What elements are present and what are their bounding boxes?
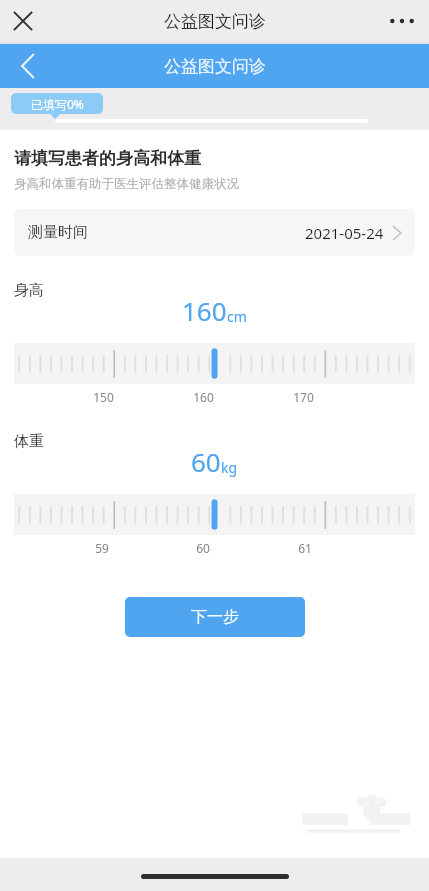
- staticText: 体重: [14, 432, 44, 451]
- button[interactable]: 下一步: [125, 597, 305, 637]
- staticText: 下一步: [191, 607, 239, 627]
- staticText: 公益图文问诊: [164, 11, 266, 32]
- staticText: kg: [221, 458, 238, 477]
- button[interactable]: Close: [6, 4, 40, 38]
- staticText: 59: [95, 540, 109, 556]
- button[interactable]: 体重 ruler: [14, 494, 415, 535]
- button[interactable]: Back: [8, 46, 48, 86]
- staticText: 160: [193, 389, 214, 405]
- staticText: 61: [298, 540, 312, 556]
- staticText: 170: [293, 389, 314, 405]
- button[interactable]: More options: [385, 4, 419, 38]
- staticText: 公益图文问诊: [164, 56, 266, 77]
- button[interactable]: 测量时间: [14, 209, 415, 256]
- staticText: 160: [182, 293, 227, 328]
- staticText: 150: [93, 389, 114, 405]
- staticText: 测量时间: [28, 223, 88, 242]
- staticText: 请填写患者的身高和体重: [14, 148, 201, 169]
- button[interactable]: 身高 ruler: [14, 343, 415, 384]
- staticText: 身高: [14, 281, 44, 300]
- staticText: 2021-05-24: [305, 223, 384, 243]
- staticText: 已填写0%: [31, 96, 84, 112]
- staticText: cm: [227, 307, 247, 326]
- staticText: 身高和体重有助于医生评估整体健康状况: [14, 176, 239, 192]
- staticText: 60: [191, 444, 221, 479]
- staticText: 60: [196, 540, 210, 556]
